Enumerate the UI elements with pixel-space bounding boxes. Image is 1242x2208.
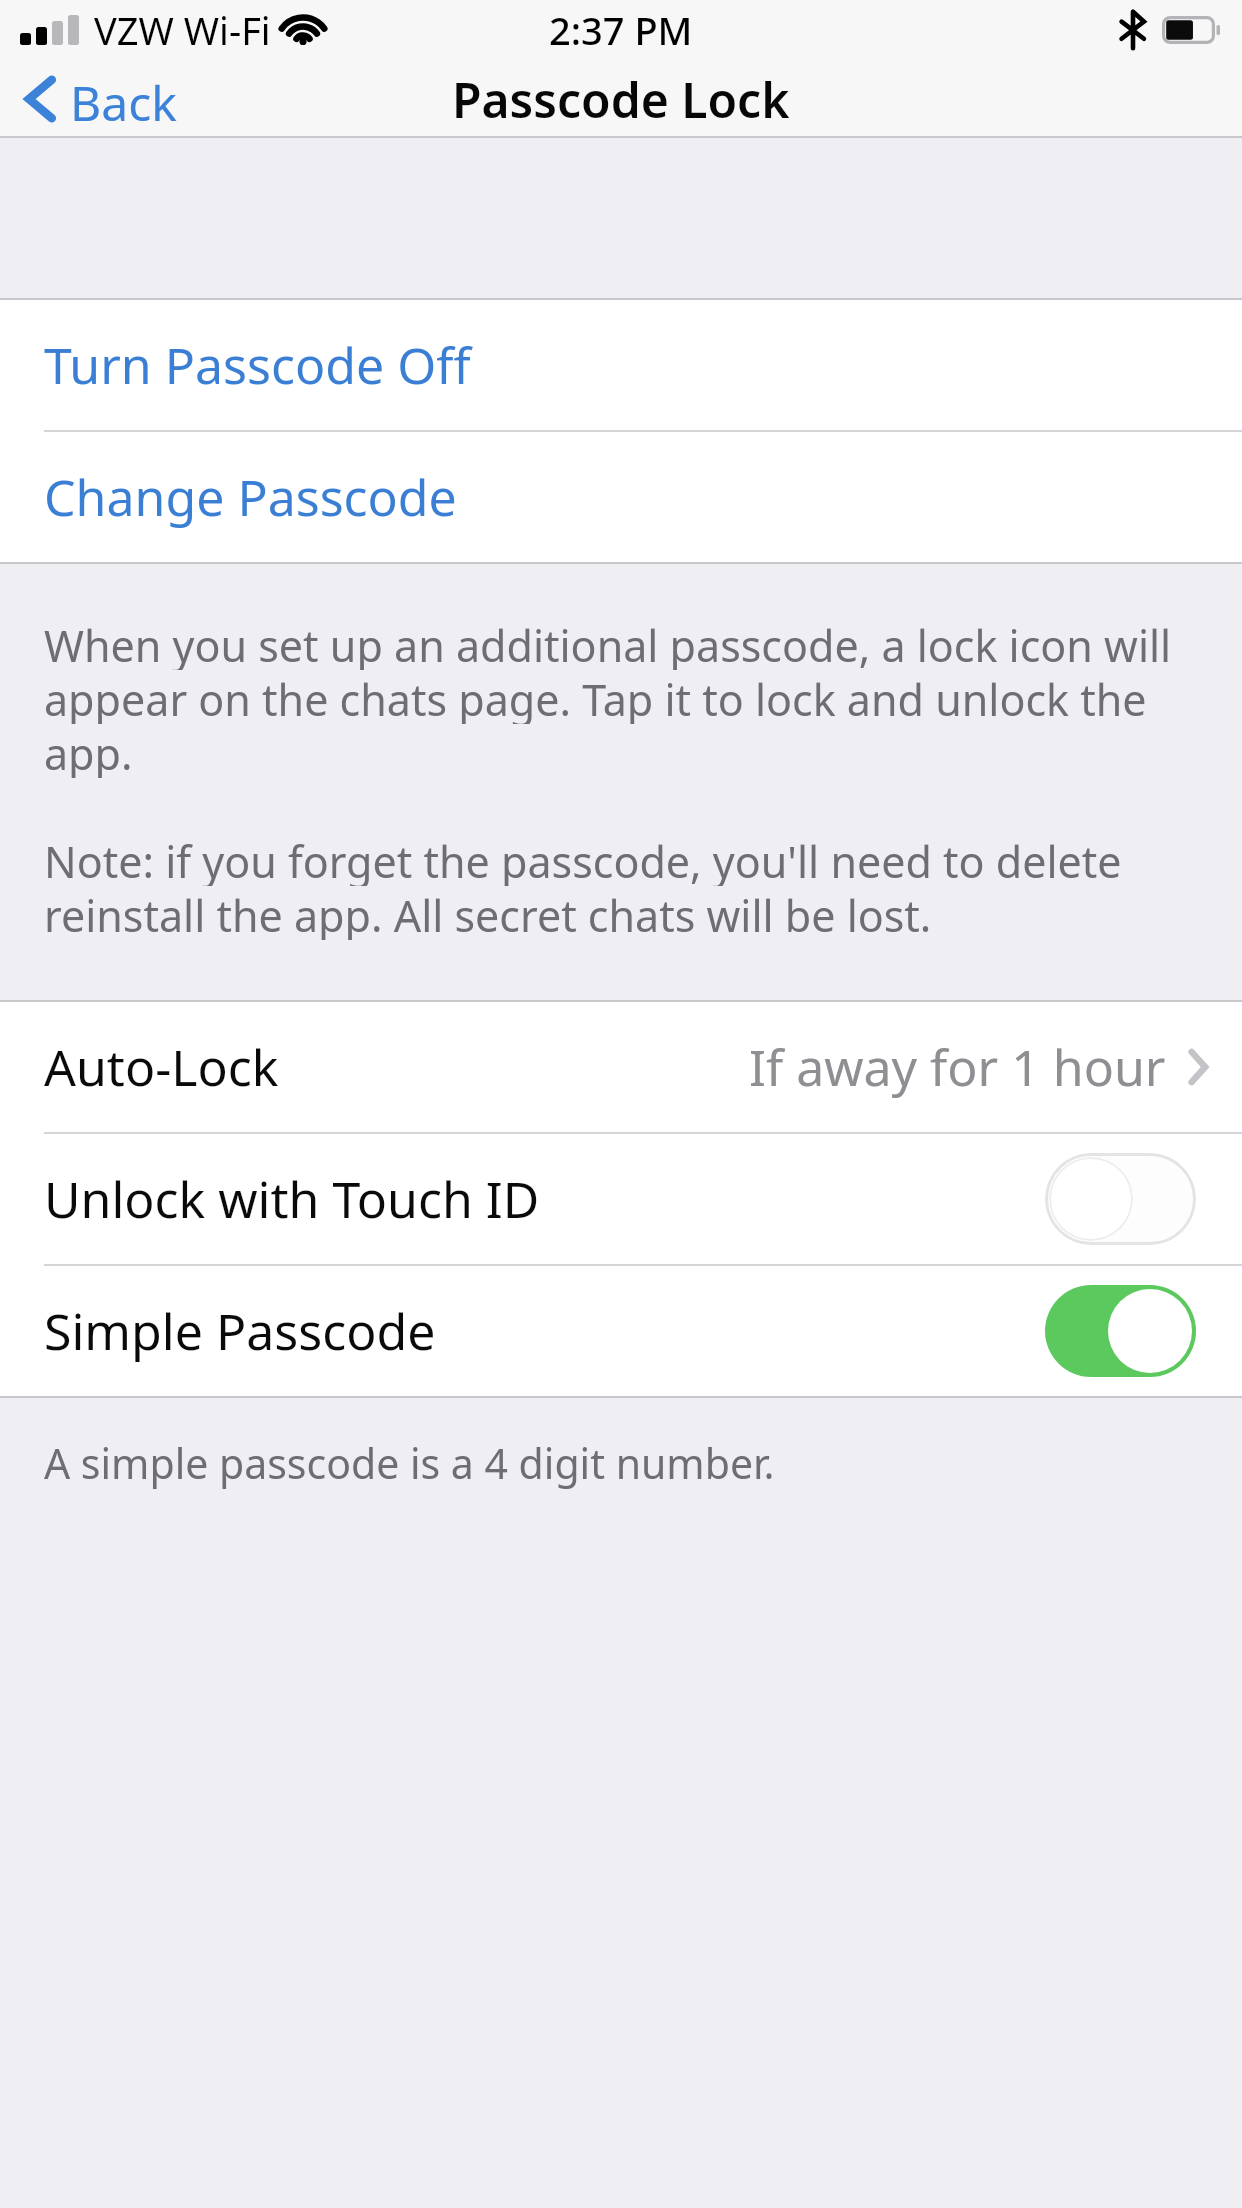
- staticText: Note: if you forget the passcode, you'll…: [44, 832, 1198, 886]
- staticText: If away for 1 hour: [749, 1033, 1166, 1101]
- staticText: Turn Passcode Off: [44, 331, 471, 399]
- button[interactable]: Unlock with Touch ID: [0, 1134, 1242, 1264]
- button[interactable]: Turn Passcode Off: [0, 300, 1242, 430]
- button[interactable]: Auto-Lock: [0, 1002, 1242, 1132]
- staticText: Simple Passcode: [44, 1297, 436, 1365]
- staticText: Unlock with Touch ID: [44, 1165, 540, 1233]
- staticText: reinstall the app. All secret chats will…: [44, 886, 932, 940]
- staticText: When you set up an additional passcode, …: [44, 616, 1172, 670]
- button[interactable]: Back: [0, 60, 201, 138]
- button[interactable]: Off: [1045, 1153, 1196, 1245]
- staticText: 2:37 PM: [549, 4, 693, 56]
- staticText: app.: [44, 724, 133, 778]
- staticText: VZW Wi-Fi: [94, 4, 271, 56]
- button[interactable]: Simple Passcode: [0, 1266, 1242, 1396]
- staticText: A simple passcode is a 4 digit number.: [44, 1435, 775, 1491]
- button[interactable]: Change Passcode: [0, 432, 1242, 562]
- staticText: Passcode Lock: [452, 67, 790, 132]
- staticText: Change Passcode: [44, 463, 457, 531]
- staticText: Back: [70, 70, 177, 128]
- button[interactable]: On: [1045, 1285, 1196, 1377]
- staticText: Auto-Lock: [44, 1033, 279, 1101]
- staticText: appear on the chats page. Tap it to lock…: [44, 670, 1147, 724]
